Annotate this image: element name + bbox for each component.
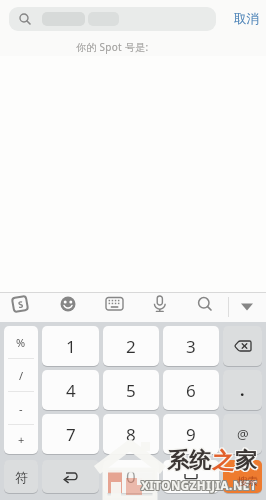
staticText: XITONGZHIJIA.NET (141, 477, 257, 493)
staticText: 家 (236, 448, 258, 476)
staticText: 家 (235, 446, 257, 474)
staticText: @ (237, 425, 249, 443)
button[interactable]: 6 (163, 370, 219, 410)
staticText: 之 (211, 446, 233, 474)
button[interactable]: 3 (163, 326, 219, 366)
staticText: XITONGZHIJIA.NET (140, 478, 256, 494)
button[interactable]: + (4, 425, 38, 454)
staticText: 家 (234, 446, 256, 474)
staticText: 之 (212, 446, 234, 474)
staticText: 家 (235, 448, 257, 476)
staticText: 你的 Spot 号是: (76, 40, 149, 54)
staticText: 0 (126, 465, 136, 488)
button[interactable] (223, 326, 262, 366)
staticText: 符 (15, 469, 28, 485)
staticText: 系统 (168, 448, 212, 476)
staticText: XITONGZHIJIA.NET (141, 479, 257, 495)
staticText: 6 (186, 379, 196, 402)
staticText: 取消 (234, 11, 259, 27)
staticText: XITONGZHIJIA.NET (140, 477, 256, 493)
button[interactable] (152, 295, 168, 314)
button[interactable]: S (11, 295, 29, 313)
staticText: 5 (126, 379, 136, 402)
staticText: 系统 (166, 446, 210, 474)
button[interactable]: 5 (103, 370, 159, 410)
button[interactable] (42, 460, 99, 493)
staticText: 4 (66, 379, 76, 402)
button[interactable] (9, 7, 216, 31)
staticText: 家 (236, 446, 258, 474)
button[interactable] (240, 302, 254, 312)
staticText: 之 (213, 448, 235, 476)
staticText: 之 (213, 447, 235, 475)
staticText: XITONGZHIJIA.NET (142, 477, 258, 493)
staticText: XITONGZHIJIA.NET (142, 478, 258, 494)
button[interactable]: 2 (103, 326, 159, 366)
staticText: 系统 (167, 447, 211, 475)
staticText: 7 (66, 423, 76, 446)
button[interactable]: 4 (42, 370, 99, 410)
staticText: 系统 (166, 447, 210, 475)
staticText: 2 (126, 335, 136, 358)
button[interactable]: 0 (103, 460, 159, 493)
staticText: 之 (213, 446, 235, 474)
staticText: 9 (186, 423, 196, 446)
button[interactable]: 8 (103, 414, 159, 454)
staticText: 1 (66, 335, 76, 358)
button[interactable]: % (4, 326, 38, 358)
staticText: 系统 (168, 446, 212, 474)
staticText: 8 (126, 423, 136, 446)
button[interactable]: . (223, 370, 262, 410)
button[interactable]: @ (223, 414, 262, 454)
button[interactable]: % (4, 326, 38, 454)
staticText: 3 (186, 335, 196, 358)
button[interactable]: 取消 (231, 9, 261, 29)
staticText: 家 (236, 447, 258, 475)
staticText: 之 (211, 447, 233, 475)
staticText: / (19, 368, 24, 383)
staticText: 系统 (166, 448, 210, 476)
button[interactable]: 9 (163, 414, 219, 454)
button[interactable] (163, 460, 219, 493)
button[interactable]: 符 (4, 460, 38, 493)
staticText: % (16, 335, 26, 350)
staticText: 之 (212, 448, 234, 476)
button[interactable]: - (4, 392, 38, 424)
staticText: 之 (211, 448, 233, 476)
button[interactable] (197, 296, 214, 313)
staticText: 搜索 (237, 475, 258, 488)
staticText: 家 (234, 447, 256, 475)
button[interactable] (223, 460, 262, 493)
button[interactable]: 7 (42, 414, 99, 454)
staticText: - (19, 401, 23, 416)
staticText: . (240, 379, 245, 401)
staticText: 系统 (167, 448, 211, 476)
staticText: 家 (235, 447, 257, 475)
staticText: 系统 (168, 447, 212, 475)
button[interactable] (60, 296, 76, 312)
button[interactable]: / (4, 359, 38, 391)
button[interactable]: 1 (42, 326, 99, 366)
staticText: 系统 (167, 446, 211, 474)
staticText: XITONGZHIJIA.NET (140, 479, 256, 495)
staticText: XITONGZHIJIA.NET (141, 478, 257, 494)
staticText: XITONGZHIJIA.NET (142, 479, 258, 495)
staticText: + (18, 432, 25, 447)
staticText: 之 (212, 447, 234, 475)
button[interactable] (105, 296, 125, 312)
staticText: S (17, 298, 24, 310)
staticText: 家 (234, 448, 256, 476)
